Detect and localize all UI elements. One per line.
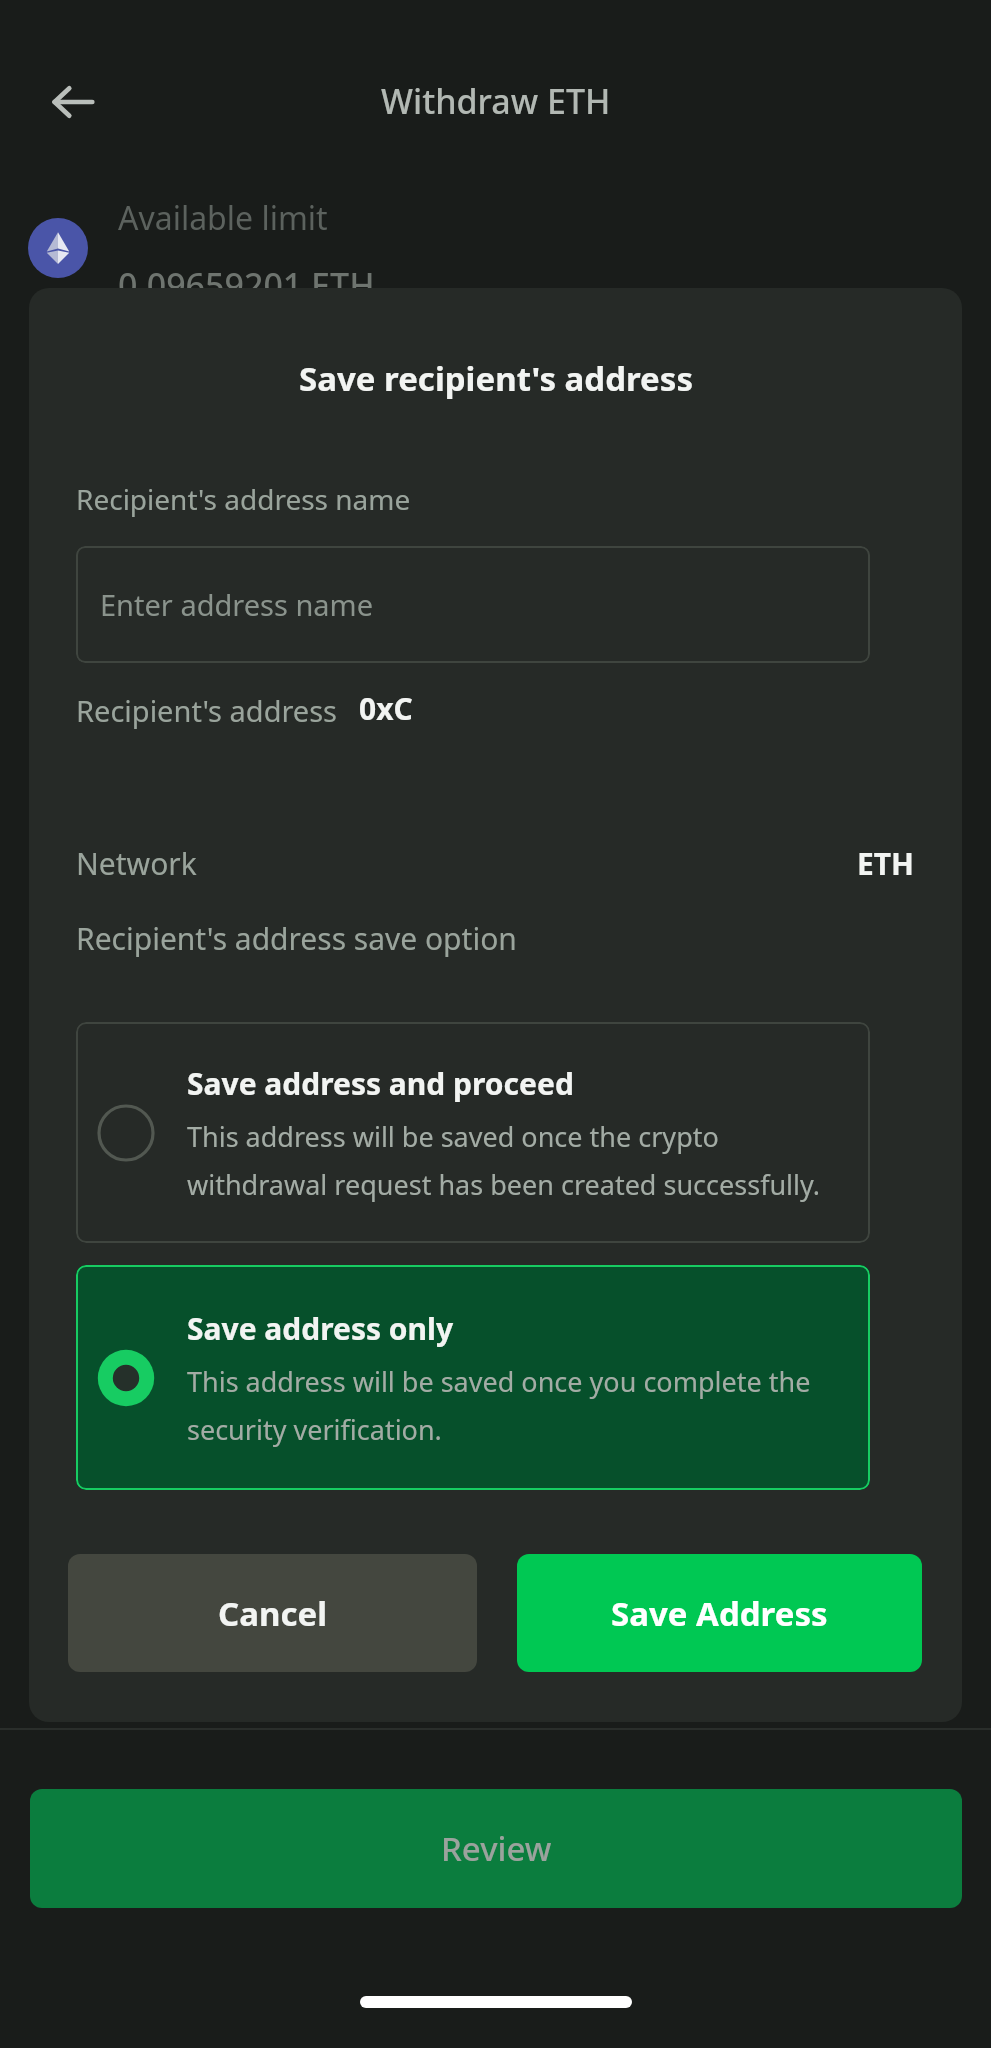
staticText: Enter address name [100, 585, 374, 624]
staticText: 0xC [359, 688, 413, 729]
staticText: Recipient's address save option [76, 918, 517, 959]
staticText: Recipient's address [76, 691, 338, 730]
staticText: Cancel [218, 1591, 327, 1636]
staticText: Save Address [611, 1591, 828, 1636]
staticText: Recipient's address name [76, 480, 411, 518]
staticText: Network [76, 843, 197, 884]
staticText: Withdraw ETH [381, 78, 611, 124]
button[interactable]: Back [29, 58, 117, 146]
staticText: 0.09659201 ETH [118, 262, 375, 308]
staticText: Save address only [187, 1308, 454, 1349]
staticText: This address will be saved once the cryp… [187, 1118, 837, 1203]
staticText: Available limit [118, 196, 328, 240]
button[interactable]: Review [30, 1789, 962, 1908]
staticText: This address will be saved once you comp… [187, 1363, 837, 1448]
staticText: Save address and proceed [187, 1063, 574, 1104]
button[interactable]: Save address and proceed [76, 1022, 870, 1243]
button[interactable]: Save Address [517, 1554, 922, 1672]
button[interactable]: Enter address name [76, 546, 870, 663]
staticText: Save recipient's address [299, 356, 693, 401]
button[interactable]: Save address only [76, 1265, 870, 1490]
staticText: ETH [857, 843, 915, 884]
button[interactable]: Cancel [68, 1554, 477, 1672]
staticText: Review [441, 1826, 552, 1871]
